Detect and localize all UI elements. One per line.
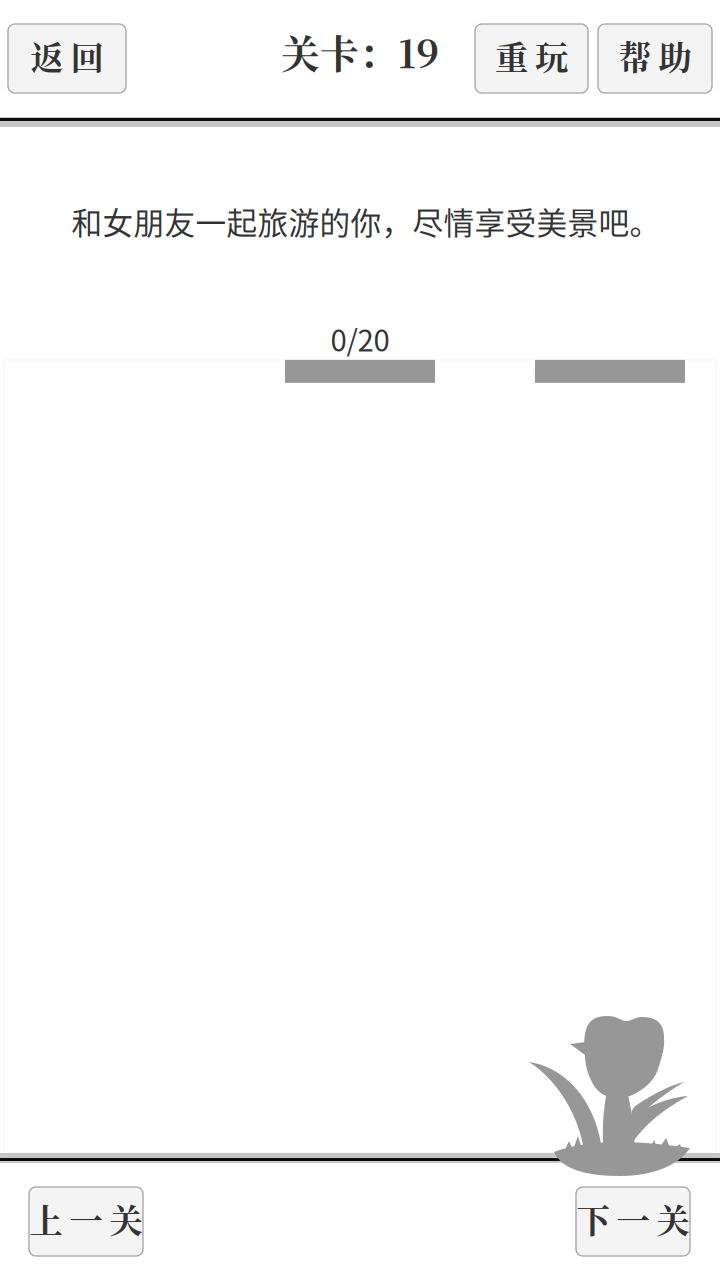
staticText: 0/20 — [330, 317, 389, 360]
staticText: 帮 助 — [618, 32, 691, 79]
button[interactable]: 帮 助 — [598, 24, 712, 93]
button[interactable]: 上 一 关 — [29, 1187, 143, 1256]
button[interactable]: 返 回 — [8, 24, 126, 93]
staticText: 上 一 关 — [29, 1195, 142, 1242]
button[interactable]: 重 玩 — [475, 24, 588, 93]
staticText: 返 回 — [30, 32, 103, 79]
button[interactable]: 下 一 关 — [576, 1187, 690, 1256]
staticText: 和女朋友一起旅游的你，尽情享受美景吧。 — [71, 199, 660, 243]
staticText: 关卡：19 — [281, 24, 439, 79]
staticText: 下 一 关 — [576, 1195, 689, 1242]
staticText: 重 玩 — [495, 32, 568, 79]
